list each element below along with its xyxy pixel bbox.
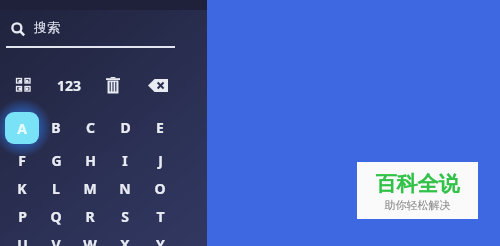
other: Search — [11, 22, 25, 36]
staticText: S — [121, 207, 129, 226]
staticText: J — [158, 151, 163, 170]
button[interactable]: B — [41, 113, 71, 141]
button[interactable]: T — [145, 202, 175, 230]
button[interactable]: G — [41, 146, 71, 174]
button[interactable]: O — [145, 174, 175, 202]
button[interactable]: 123 — [53, 74, 85, 96]
button[interactable]: P — [7, 202, 37, 230]
button[interactable]: X — [110, 230, 140, 246]
staticText: V — [51, 235, 61, 246]
staticText: N — [119, 179, 131, 198]
button[interactable]: 百科全说 — [357, 162, 478, 219]
staticText: C — [86, 118, 95, 137]
staticText: X — [120, 235, 130, 246]
button[interactable]: Q — [41, 202, 71, 230]
button[interactable]: V — [41, 230, 71, 246]
button[interactable]: K — [7, 174, 37, 202]
staticText: 百科全说 — [357, 171, 478, 197]
staticText: W — [83, 235, 97, 246]
staticText: G — [51, 151, 62, 170]
button[interactable]: D — [110, 113, 140, 141]
staticText: R — [85, 207, 95, 226]
staticText: H — [85, 151, 96, 170]
staticText: 助你轻松解决 — [357, 198, 478, 214]
staticText: F — [18, 151, 26, 170]
staticText: 搜索 — [34, 19, 60, 35]
button[interactable]: Keyboard layout — [11, 74, 35, 96]
button[interactable]: H — [75, 146, 105, 174]
staticText: D — [120, 118, 131, 137]
button[interactable]: W — [75, 230, 105, 246]
button[interactable]: Backspace — [145, 74, 171, 96]
staticText: K — [17, 179, 27, 198]
button[interactable]: U — [7, 230, 37, 246]
staticText: Y — [156, 235, 165, 246]
staticText: Q — [50, 207, 62, 226]
staticText: E — [156, 118, 164, 137]
button[interactable]: I — [110, 146, 140, 174]
staticText: T — [156, 207, 165, 226]
staticText: A — [17, 119, 27, 138]
button[interactable]: N — [110, 174, 140, 202]
staticText: L — [52, 179, 60, 198]
staticText: B — [51, 118, 61, 137]
button[interactable]: Y — [145, 230, 175, 246]
button[interactable]: C — [75, 113, 105, 141]
button[interactable]: Search — [6, 15, 138, 43]
button[interactable]: Delete — [101, 73, 125, 97]
button[interactable]: M — [75, 174, 105, 202]
staticText: M — [83, 179, 97, 198]
button[interactable]: R — [75, 202, 105, 230]
staticText: I — [122, 151, 128, 170]
button[interactable]: S — [110, 202, 140, 230]
button[interactable]: E — [145, 113, 175, 141]
staticText: P — [18, 207, 27, 226]
staticText: 123 — [57, 76, 82, 95]
staticText: O — [154, 179, 166, 198]
button[interactable]: F — [7, 146, 37, 174]
button[interactable]: A — [5, 112, 39, 144]
button[interactable]: L — [41, 174, 71, 202]
staticText: U — [17, 235, 28, 246]
button[interactable]: J — [145, 146, 175, 174]
